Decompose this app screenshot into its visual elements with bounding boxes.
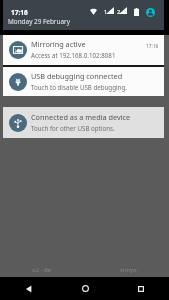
staticText: o2 - de [32, 266, 52, 274]
staticText: Monday 29 February [8, 17, 70, 26]
staticText: Access at 192.168.0.102:8081 [31, 51, 116, 59]
button[interactable]: Connected as a media device [3, 107, 164, 138]
button[interactable]: USB debugging connected [3, 67, 164, 96]
staticText: 1 [104, 8, 108, 15]
button[interactable]: Recent apps [113, 277, 169, 300]
button[interactable]: Back [0, 277, 57, 300]
button[interactable]: Home [57, 277, 113, 300]
staticText: 2 [117, 8, 121, 15]
staticText: Touch for other USB options. [31, 124, 115, 132]
button[interactable]: Mirroring active [3, 35, 164, 65]
staticText: USB debugging connected [31, 71, 123, 81]
staticText: Mirroring active [31, 39, 86, 49]
staticText: 17:16 [11, 8, 28, 17]
staticText: simyo [120, 266, 137, 274]
staticText: Connected as a media device [31, 112, 131, 122]
staticText: Touch to disable USB debugging. [31, 83, 127, 91]
staticText: 17:16 [146, 43, 159, 50]
